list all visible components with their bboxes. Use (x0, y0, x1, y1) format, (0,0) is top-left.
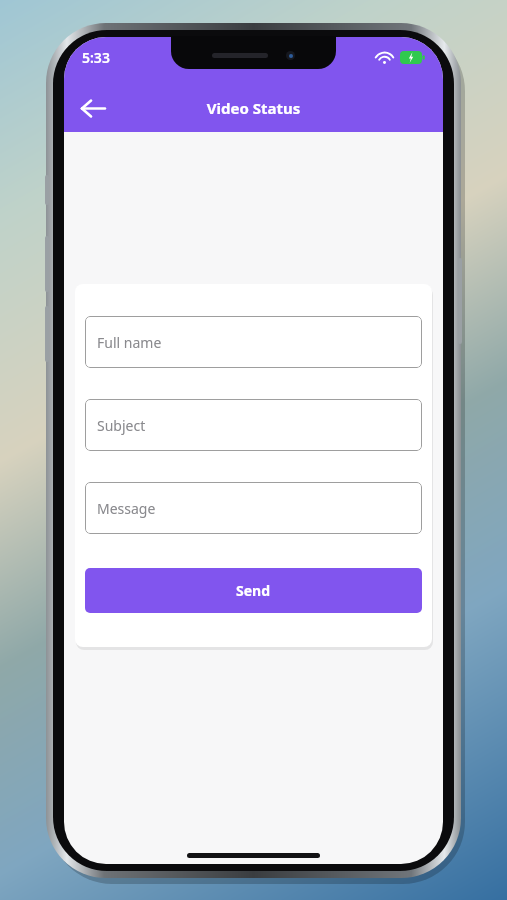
button[interactable]: Subject (85, 399, 422, 451)
staticText: Subject (97, 416, 146, 435)
staticText: Full name (97, 333, 162, 352)
button[interactable]: Back (70, 85, 116, 131)
staticText: Send (236, 581, 271, 600)
staticText: Message (97, 499, 156, 518)
button[interactable]: Send (85, 568, 422, 613)
staticText: Video Status (64, 98, 443, 118)
button[interactable]: Full name (85, 316, 422, 368)
staticText: 5:33 (82, 48, 110, 67)
button[interactable]: Message (85, 482, 422, 534)
